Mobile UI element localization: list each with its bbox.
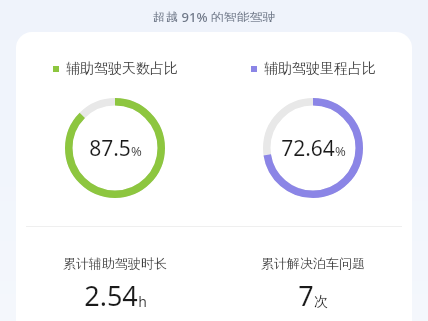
staticText: h xyxy=(138,292,147,311)
button[interactable]: 辅助驾驶里程占比 xyxy=(214,60,412,78)
staticText: 72.64 xyxy=(281,134,335,163)
staticText: 2.54 xyxy=(84,277,138,314)
staticText: 累计辅助驾驶时长 xyxy=(63,255,167,271)
staticText: % xyxy=(335,142,346,160)
staticText: 7 xyxy=(298,277,314,314)
staticText: 超越 91% 的智能驾驶 xyxy=(152,8,276,22)
staticText: 累计解决泊车问题 xyxy=(261,255,365,271)
staticText: % xyxy=(131,142,142,160)
button[interactable]: 累计解决泊车问题 xyxy=(214,255,412,314)
button[interactable]: 累计辅助驾驶时长 xyxy=(16,255,214,314)
staticText: 次 xyxy=(314,293,328,311)
staticText: 87.5 xyxy=(89,134,131,163)
staticText: 辅助驾驶天数占比 xyxy=(66,60,178,78)
button[interactable]: 辅助驾驶天数占比 xyxy=(16,60,214,78)
button[interactable]: 辅助驾驶天数占比 xyxy=(16,32,412,321)
staticText: 辅助驾驶里程占比 xyxy=(264,60,376,78)
